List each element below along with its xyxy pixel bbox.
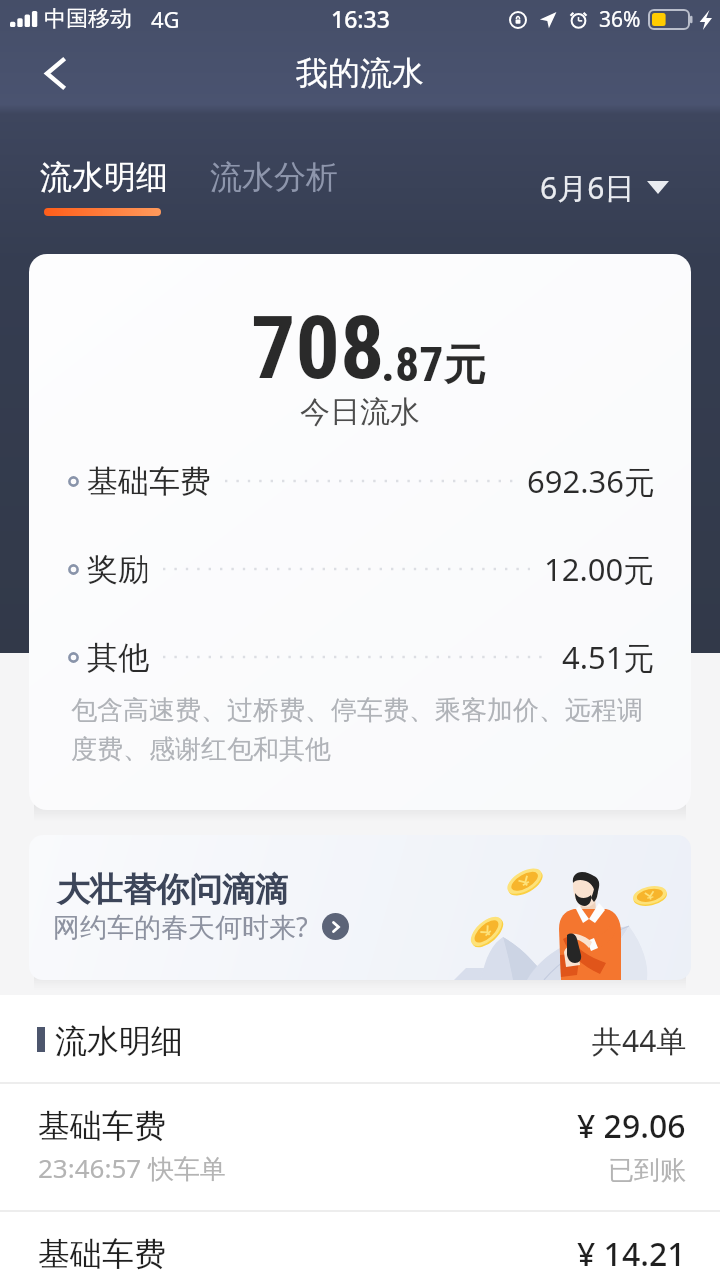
button[interactable]: 流水明细 bbox=[40, 157, 168, 216]
staticText: 692.36元 bbox=[527, 460, 655, 502]
staticText: 元 bbox=[444, 339, 486, 392]
staticText: 基础车费 bbox=[38, 1106, 166, 1146]
button[interactable]: 大壮替你问滴滴 bbox=[29, 835, 691, 980]
staticText: 6月6日 bbox=[540, 167, 635, 208]
staticText: 基础车费 bbox=[38, 1234, 166, 1274]
staticText: 大壮替你问滴滴 bbox=[57, 869, 288, 911]
button[interactable]: 基础车费 bbox=[0, 1084, 720, 1210]
staticText: 中国移动 bbox=[44, 5, 132, 33]
staticText: 我的流水 bbox=[296, 53, 424, 93]
staticText: 4.51元 bbox=[562, 636, 655, 678]
staticText: 基础车费 bbox=[87, 462, 211, 501]
staticText: 4G bbox=[151, 4, 180, 34]
button[interactable]: 基础车费 bbox=[0, 1212, 720, 1280]
staticText: 奖励 bbox=[87, 550, 149, 589]
staticText: 708 bbox=[251, 296, 385, 392]
staticText: 36% bbox=[599, 5, 641, 34]
button[interactable]: 流水分析 bbox=[210, 157, 338, 197]
staticText: 流水明细 bbox=[55, 1021, 183, 1061]
staticText: ¥ 14.21 bbox=[577, 1232, 686, 1276]
staticText: 12.00元 bbox=[544, 548, 655, 590]
button[interactable]: Back bbox=[20, 46, 92, 102]
staticText: ¥ 29.06 bbox=[577, 1104, 686, 1148]
staticText: 23:46:57 快车单 bbox=[38, 1150, 226, 1186]
staticText: 今日流水 bbox=[300, 393, 420, 431]
staticText: 流水分析 bbox=[210, 157, 338, 197]
staticText: 16:33 bbox=[331, 3, 390, 34]
staticText: 流水明细 bbox=[40, 157, 168, 197]
staticText: 包含高速费、过桥费、停车费、乘客加价、远程调度费、感谢红包和其他 bbox=[71, 694, 661, 766]
staticText: .87 bbox=[381, 336, 444, 392]
button[interactable]: 6月6日 bbox=[528, 161, 681, 214]
staticText: 已到账 bbox=[608, 1154, 686, 1187]
staticText: 共44单 bbox=[592, 1020, 687, 1061]
staticText: 网约车的春天何时来? bbox=[53, 908, 308, 945]
staticText: 其他 bbox=[87, 638, 149, 677]
